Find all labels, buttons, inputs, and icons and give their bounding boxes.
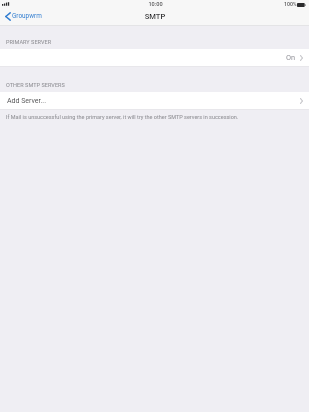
- staticText: If Mail is unsuccessful using the primar…: [6, 114, 296, 120]
- staticText: PRIMARY SERVER: [6, 39, 52, 45]
- staticText: Add Server...: [7, 97, 47, 105]
- staticText: On: [286, 53, 296, 62]
- staticText: Groupwrm: [12, 12, 42, 20]
- button[interactable]: Add Server: [0, 92, 309, 110]
- staticText: OTHER SMTP SERVERS: [6, 82, 65, 88]
- button[interactable]: Back to Groupwrm: [3, 10, 46, 22]
- staticText: 100%: [284, 1, 297, 7]
- button[interactable]: Primary server, On: [0, 49, 309, 67]
- staticText: SMTP: [135, 12, 175, 21]
- staticText: 10:00: [148, 1, 163, 8]
